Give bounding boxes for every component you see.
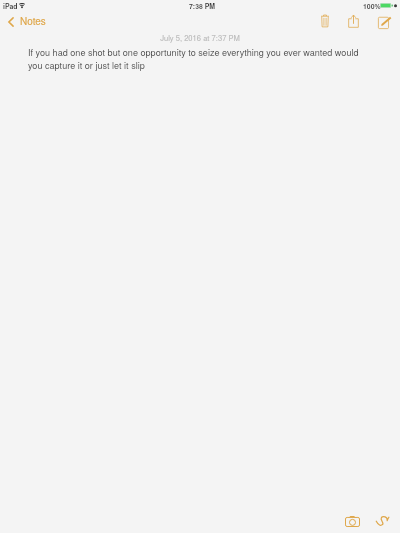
staticText: July 5, 2016 at 7:37 PM: [0, 32, 400, 43]
staticText: Notes: [20, 14, 46, 28]
staticText: 100%: [363, 1, 381, 11]
button[interactable]: Markup: [370, 509, 395, 533]
button[interactable]: Camera: [340, 509, 365, 533]
button[interactable]: Delete: [313, 10, 337, 30]
staticText: 7:38 PM: [189, 1, 216, 11]
staticText: iPad: [3, 1, 18, 11]
button[interactable]: Compose: [372, 13, 396, 33]
button[interactable]: Notes: [0, 11, 50, 31]
button[interactable]: If you had one shot but one opportunity …: [0, 46, 400, 71]
button[interactable]: Share: [341, 11, 365, 31]
